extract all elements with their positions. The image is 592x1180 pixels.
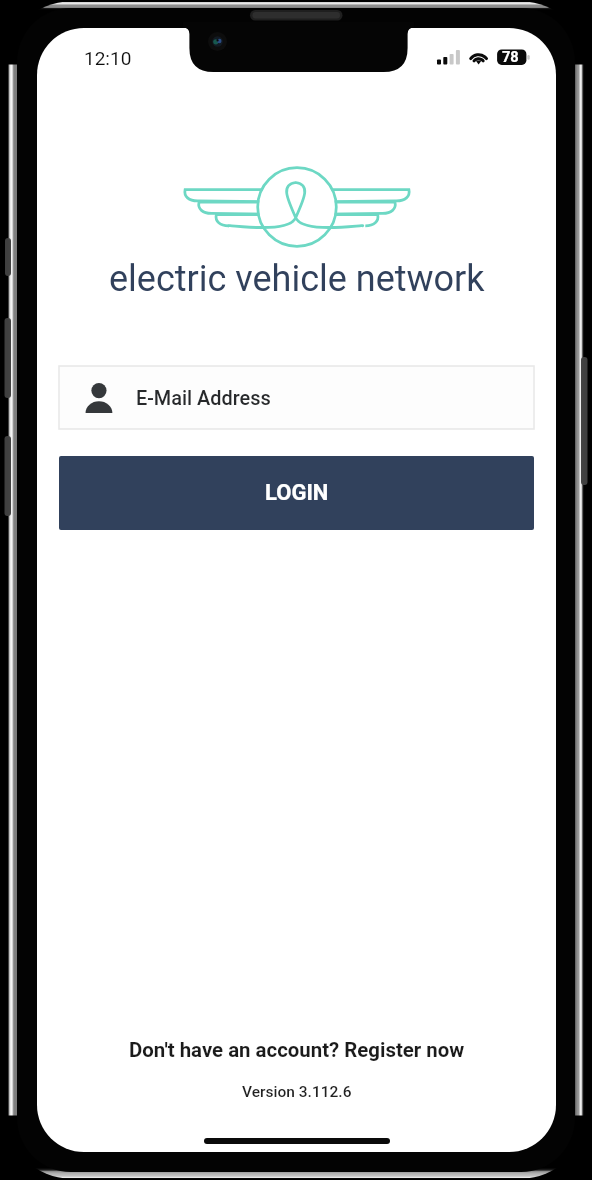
button[interactable]: E-Mail Address [59, 366, 534, 429]
staticText: Don't have an account? Register now [129, 1038, 465, 1062]
button[interactable]: Don't have an account? Register now [119, 1033, 475, 1067]
staticText: E-Mail Address [136, 387, 271, 410]
staticText: 12:10 [84, 47, 132, 69]
staticText: electric vehicle network [109, 258, 485, 300]
staticText: 78 [502, 48, 519, 65]
button[interactable]: LOGIN [59, 456, 534, 530]
staticText: LOGIN [265, 480, 329, 506]
staticText: Version 3.112.6 [242, 1083, 352, 1101]
